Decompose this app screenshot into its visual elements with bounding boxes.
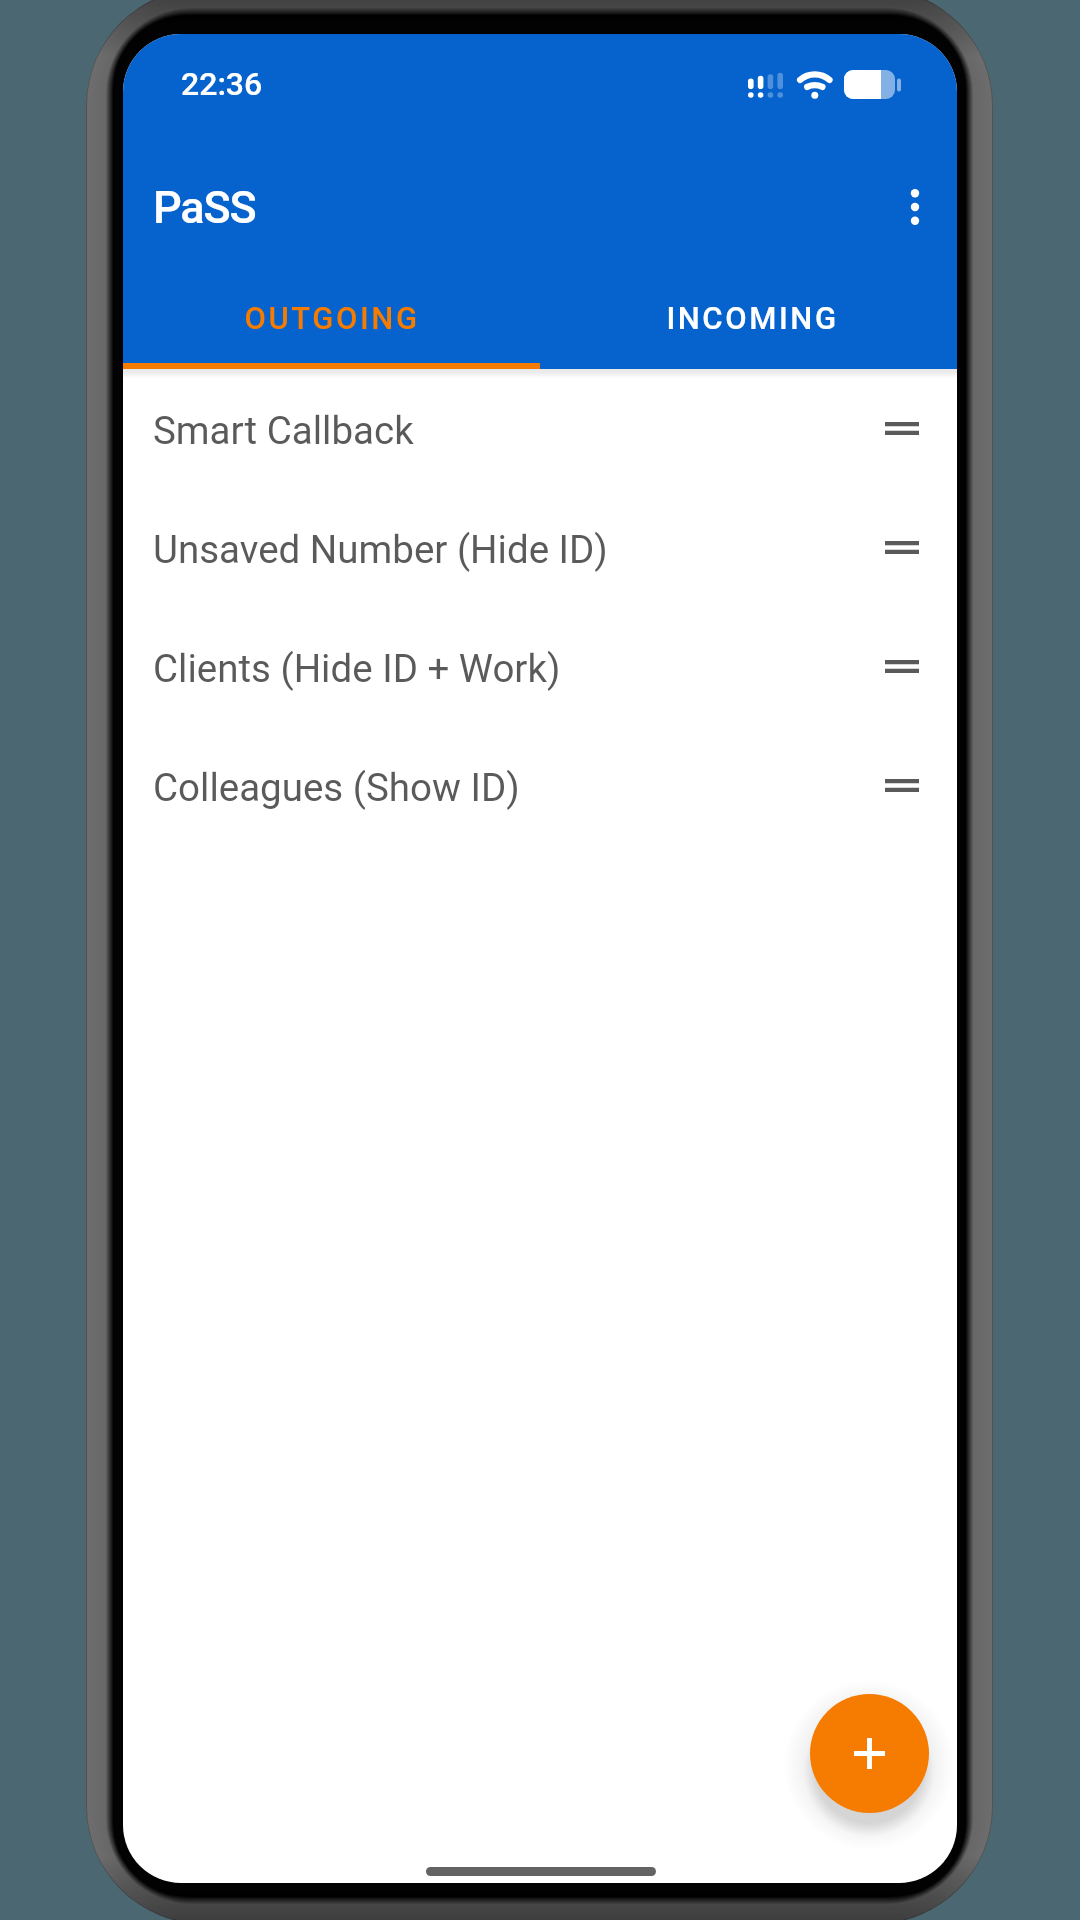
staticText: PaSS [153,181,256,234]
button[interactable]: Add [810,1694,929,1813]
staticText: Unsaved Number (Hide ID) [153,527,608,572]
button[interactable]: OUTGOING [123,300,540,378]
button[interactable]: More options [875,167,955,247]
button[interactable]: Clients (Hide ID + Work) [123,609,957,728]
staticText: INCOMING [666,300,839,336]
staticText: Colleagues (Show ID) [153,765,520,810]
button[interactable]: Colleagues (Show ID) [123,728,957,847]
staticText: 22:36 [181,65,263,103]
button[interactable]: Unsaved Number (Hide ID) [123,490,957,609]
staticText: Smart Callback [153,408,414,453]
button[interactable]: INCOMING [540,300,957,378]
staticText: Clients (Hide ID + Work) [153,646,561,691]
staticText: OUTGOING [244,300,420,336]
button[interactable]: Smart Callback [123,371,957,490]
